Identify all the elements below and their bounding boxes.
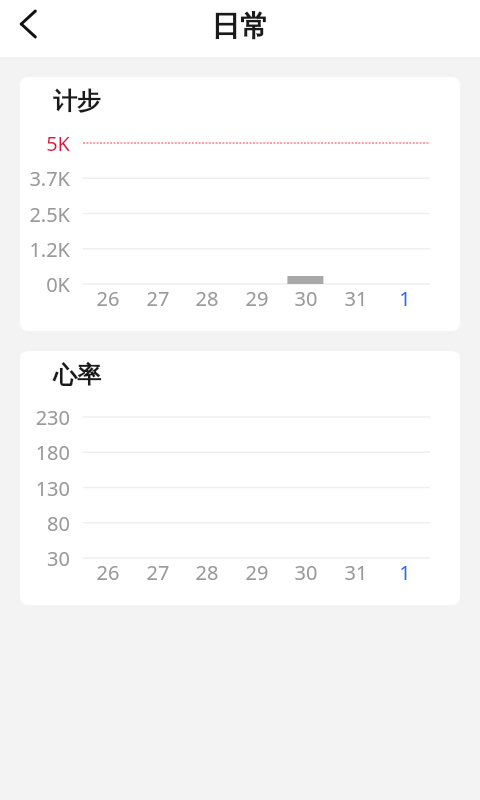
staticText: 80: [20, 510, 70, 537]
staticText: 130: [20, 475, 70, 502]
staticText: 3.7K: [20, 165, 70, 192]
staticText: 28: [182, 559, 232, 586]
staticText: 30: [20, 545, 70, 572]
button[interactable]: Back: [0, 0, 56, 48]
staticText: 日常: [211, 8, 269, 45]
staticText: 29: [232, 285, 282, 312]
staticText: 30: [281, 559, 331, 586]
staticText: 27: [133, 285, 183, 312]
staticText: 31: [331, 559, 381, 586]
button[interactable]: 计步: [20, 77, 460, 331]
staticText: 26: [83, 285, 133, 312]
button[interactable]: 心率: [20, 351, 460, 605]
staticText: 28: [182, 285, 232, 312]
staticText: 1.2K: [20, 236, 70, 263]
staticText: 180: [20, 439, 70, 466]
staticText: 31: [331, 285, 381, 312]
staticText: 29: [232, 559, 282, 586]
staticText: 30: [281, 285, 331, 312]
staticText: 2.5K: [20, 201, 70, 228]
staticText: 0K: [20, 271, 70, 298]
staticText: 26: [83, 559, 133, 586]
staticText: 230: [20, 404, 70, 431]
staticText: 27: [133, 559, 183, 586]
staticText: 1: [380, 559, 430, 586]
staticText: 心率: [53, 360, 101, 390]
staticText: 1: [380, 285, 430, 312]
staticText: 5K: [20, 130, 70, 157]
staticText: 计步: [53, 86, 101, 116]
